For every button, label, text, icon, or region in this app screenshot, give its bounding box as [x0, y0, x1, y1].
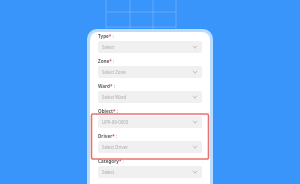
staticText: Category* : [98, 158, 124, 164]
staticText: Select Driver [102, 144, 192, 150]
staticText: Driver* : [98, 133, 118, 139]
staticText: Select Zone [102, 69, 192, 75]
button[interactable]: Select [98, 41, 202, 53]
other: Open dropdown [192, 119, 198, 125]
button[interactable]: Select Ward [98, 91, 202, 103]
staticText: Select Ward [102, 94, 192, 100]
staticText: Object* : [98, 108, 118, 114]
other: Open dropdown [192, 69, 198, 75]
other: Open dropdown [192, 169, 198, 175]
staticText: Ward* : [98, 83, 115, 89]
other: Open dropdown [192, 94, 198, 100]
staticText: Type* : [98, 33, 114, 39]
button[interactable]: Select Zone [98, 66, 202, 78]
other: Open dropdown [192, 44, 198, 50]
button[interactable]: Select [98, 166, 202, 178]
staticText: Select [102, 169, 192, 175]
staticText: Select [102, 44, 192, 50]
staticText: UP9-09-0003 [102, 119, 192, 125]
other: Open dropdown [192, 144, 198, 150]
button[interactable]: UP9-09-0003 [98, 116, 202, 128]
button[interactable]: Select Driver [98, 141, 202, 153]
staticText: Zone* : [98, 58, 115, 64]
